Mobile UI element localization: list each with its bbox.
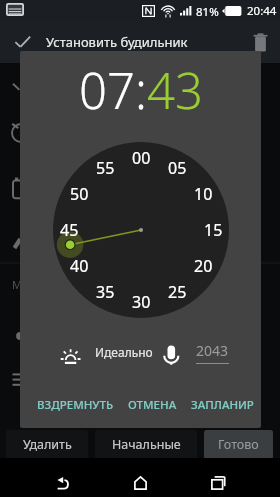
staticText: ВЗДРЕМНУТЬ — [37, 397, 114, 413]
staticText: 15 — [204, 219, 223, 241]
staticText: ОТМЕНА — [128, 397, 177, 413]
staticText: 20 — [194, 255, 213, 277]
button[interactable]: Готово — [204, 430, 273, 459]
staticText: M — [12, 277, 22, 292]
staticText: 2043 — [196, 341, 229, 360]
button[interactable]: ЗАПЛАНИР — [187, 393, 258, 417]
staticText: Начальные — [112, 436, 181, 453]
button[interactable]: Confirm — [11, 31, 33, 53]
staticText: 81% — [196, 4, 219, 20]
staticText: 45 — [60, 219, 79, 241]
button[interactable]: ВЗДРЕМНУТЬ — [33, 393, 118, 417]
button[interactable]: Home — [120, 463, 160, 497]
button[interactable]: Начальные — [95, 430, 197, 459]
staticText: 00 — [132, 147, 151, 169]
staticText: Удалить — [23, 436, 72, 453]
staticText: Идеально — [95, 344, 153, 360]
staticText: Установить будильник — [46, 33, 188, 51]
button[interactable]: 2043 — [196, 341, 229, 364]
staticText: 55 — [96, 157, 115, 179]
button[interactable]: ОТМЕНА — [124, 393, 181, 417]
staticText: 43 — [147, 57, 203, 124]
staticText: 20:44 — [247, 3, 277, 19]
staticText: Готово — [218, 436, 259, 453]
staticText: 40 — [70, 255, 89, 277]
button[interactable]: Recent apps — [198, 463, 238, 497]
staticText: 50 — [70, 183, 89, 205]
button[interactable]: Back — [43, 463, 83, 497]
button[interactable]: Voice input — [155, 339, 187, 371]
staticText: 05 — [168, 157, 187, 179]
staticText: ЗАПЛАНИР — [191, 397, 254, 413]
staticText: 07: — [79, 57, 147, 124]
staticText: 25 — [168, 281, 187, 303]
button[interactable]: Удалить — [6, 430, 88, 459]
button[interactable]: Идеально — [93, 342, 155, 362]
button[interactable]: Sunrise brightness — [54, 342, 86, 370]
staticText: 35 — [96, 281, 115, 303]
staticText: 10 — [194, 183, 213, 205]
button[interactable]: Delete — [249, 31, 271, 53]
staticText: 30 — [132, 291, 151, 313]
